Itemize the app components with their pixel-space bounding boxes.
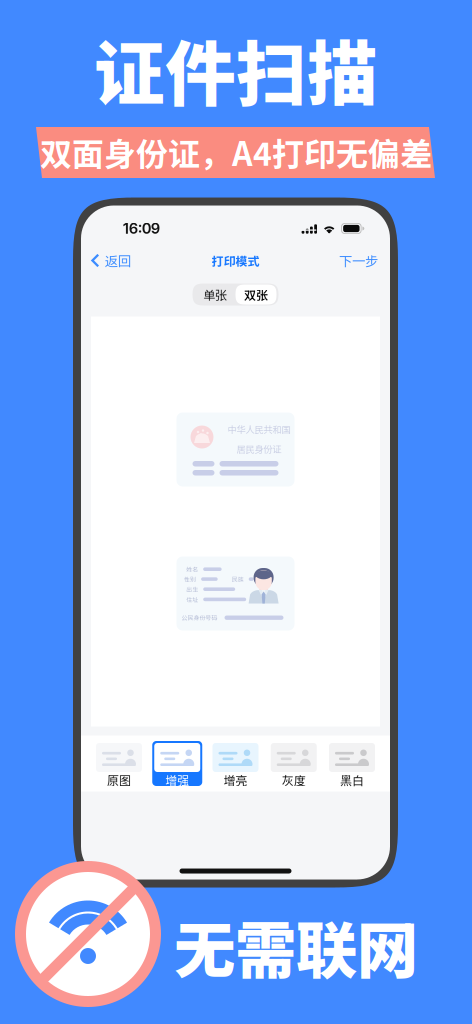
button[interactable]: 下一步 <box>331 247 390 273</box>
button[interactable]: 返回 <box>81 247 139 273</box>
staticText: 双面身份证，A4打印无偏差 <box>40 129 432 175</box>
staticText: 无需联网 <box>174 902 418 990</box>
staticText: 16:09 <box>123 220 160 237</box>
staticText: 出生 <box>186 585 198 594</box>
button[interactable]: 灰度 <box>269 741 319 786</box>
button[interactable]: 原图 <box>94 741 144 786</box>
button[interactable]: 单张 <box>194 284 235 304</box>
staticText: 灰度 <box>282 771 306 789</box>
staticText: 单张 <box>203 286 227 303</box>
staticText: 证件扫描 <box>94 18 378 120</box>
button[interactable]: 双张 <box>235 284 276 304</box>
button[interactable]: 增强 <box>152 741 202 786</box>
staticText: 黑白 <box>340 771 364 789</box>
staticText: 增亮 <box>223 771 247 789</box>
staticText: 中华人民共和国 <box>227 422 290 436</box>
staticText: 居民身份证 <box>236 442 281 455</box>
staticText: 住址 <box>186 595 198 604</box>
staticText: 民族 <box>232 575 244 583</box>
staticText: 打印模式 <box>211 252 259 269</box>
staticText: 返回 <box>105 251 131 270</box>
staticText: 性别 <box>184 575 196 583</box>
button[interactable]: 增亮 <box>210 741 260 786</box>
staticText: 双张 <box>244 286 268 303</box>
staticText: 姓名 <box>186 565 198 574</box>
button[interactable]: 黑白 <box>327 741 377 786</box>
staticText: 公民身份号码 <box>181 613 217 622</box>
staticText: 原图 <box>107 771 131 789</box>
staticText: 下一步 <box>339 251 378 270</box>
staticText: 增强 <box>165 771 189 789</box>
